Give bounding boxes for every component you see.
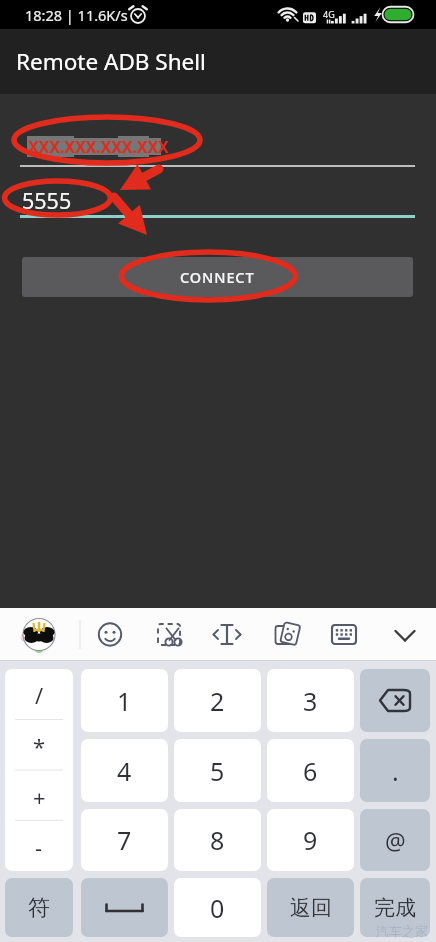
staticText: 5555 — [22, 186, 72, 215]
button[interactable]: Hide keyboard — [381, 610, 429, 658]
staticText: @ — [385, 825, 406, 856]
button[interactable]: 6 — [267, 739, 354, 802]
button[interactable]: 5555 — [20, 184, 415, 220]
button[interactable]: Baidu input method — [14, 610, 62, 658]
staticText: 4 — [117, 754, 132, 788]
button[interactable]: 2 — [174, 669, 261, 732]
button[interactable]: 1 — [81, 669, 168, 732]
staticText: XXX.XXX.XXX.XXX — [28, 136, 169, 158]
button[interactable]: . — [360, 739, 430, 802]
button[interactable]: slash star plus minus — [5, 669, 73, 871]
staticText: 8 — [210, 823, 225, 857]
button[interactable]: 符 — [5, 878, 73, 937]
button[interactable]: 完成 — [360, 878, 430, 937]
staticText: 0 — [210, 891, 225, 925]
staticText: 9 — [303, 823, 318, 857]
button[interactable]: 0 — [174, 878, 261, 937]
button[interactable]: Backspace — [360, 669, 430, 732]
button[interactable]: Keyboard settings — [320, 610, 368, 658]
staticText: 4G — [323, 8, 335, 20]
staticText: 符 — [28, 894, 50, 922]
staticText: + — [33, 782, 46, 812]
staticText: 3 — [303, 684, 318, 718]
staticText: / — [35, 680, 44, 710]
staticText: . — [392, 754, 399, 788]
staticText: 返回 — [290, 895, 332, 921]
staticText: 完成 — [374, 895, 416, 921]
button[interactable]: 7 — [81, 809, 168, 871]
button[interactable]: Space — [81, 878, 168, 937]
staticText: 6 — [303, 754, 318, 788]
staticText: Remote ADB Shell — [16, 46, 206, 77]
button[interactable]: Cut — [145, 610, 193, 658]
staticText: 99 — [390, 7, 404, 23]
button[interactable]: Move cursor — [203, 610, 251, 658]
staticText: - — [35, 832, 43, 862]
button[interactable]: Emoji — [86, 610, 134, 658]
button[interactable]: @ — [360, 809, 430, 871]
button[interactable]: 9 — [267, 809, 354, 871]
button[interactable]: 3 — [267, 669, 354, 732]
button[interactable]: 返回 — [267, 878, 354, 937]
button[interactable]: 5 — [174, 739, 261, 802]
staticText: 7 — [117, 823, 132, 857]
button[interactable]: CONNECT — [22, 257, 413, 297]
staticText: 2 — [210, 684, 225, 718]
staticText: 5 — [210, 754, 225, 788]
button[interactable] — [20, 124, 415, 170]
staticText: 18:28 | 11.6K/s — [25, 5, 128, 25]
button[interactable]: Stickers — [263, 610, 311, 658]
button[interactable]: 4 — [81, 739, 168, 802]
staticText: 汽车之家 — [376, 923, 428, 939]
staticText: * — [33, 731, 46, 761]
staticText: 1 — [117, 684, 132, 718]
staticText: CONNECT — [180, 267, 255, 287]
button[interactable]: 8 — [174, 809, 261, 871]
